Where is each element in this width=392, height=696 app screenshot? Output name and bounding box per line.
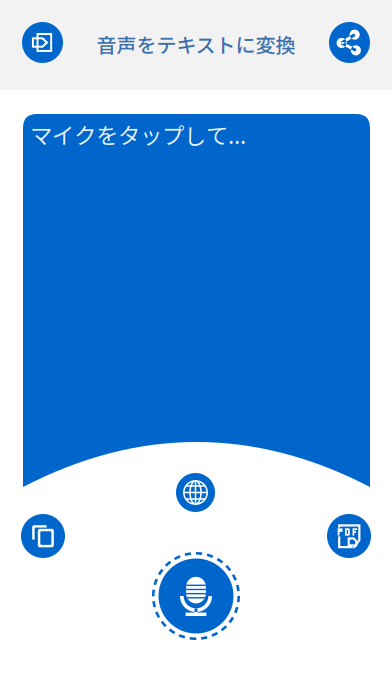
- button[interactable]: Share: [329, 22, 370, 63]
- button[interactable]: Record: [152, 552, 240, 640]
- button[interactable]: Copy: [21, 514, 65, 558]
- staticText: 音声をテキストに変換: [96, 29, 295, 58]
- button[interactable]: Export PDF: [327, 514, 371, 558]
- button[interactable]: Export: [22, 22, 63, 63]
- button[interactable]: Language: [176, 473, 215, 512]
- staticText: マイクをタップして...: [30, 118, 246, 150]
